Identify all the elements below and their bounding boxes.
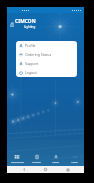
button[interactable]: More bbox=[65, 151, 84, 166]
staticText: Alerts bbox=[52, 160, 59, 163]
button[interactable]: Back bbox=[20, 166, 29, 173]
staticText: Profile bbox=[25, 43, 36, 48]
button[interactable]: Dashboard bbox=[7, 151, 27, 166]
button[interactable]: Logout bbox=[16, 68, 77, 77]
button[interactable]: Control bbox=[27, 151, 46, 166]
staticText: CIMCON bbox=[15, 18, 36, 25]
staticText: Lighting bbox=[24, 25, 36, 29]
staticText: More bbox=[71, 160, 78, 163]
staticText: Control bbox=[32, 160, 41, 163]
button[interactable]: Support bbox=[16, 59, 77, 68]
staticText: Logout bbox=[25, 70, 37, 75]
button[interactable]: Recents bbox=[63, 166, 72, 173]
button[interactable]: Ordering Status bbox=[16, 50, 77, 59]
button[interactable]: Home bbox=[41, 166, 50, 173]
button[interactable]: Alerts bbox=[46, 151, 65, 166]
button[interactable]: Profile bbox=[16, 41, 77, 50]
staticText: Dashboard bbox=[11, 160, 24, 163]
staticText: Support bbox=[25, 61, 39, 66]
staticText: Ordering Status bbox=[25, 52, 52, 57]
